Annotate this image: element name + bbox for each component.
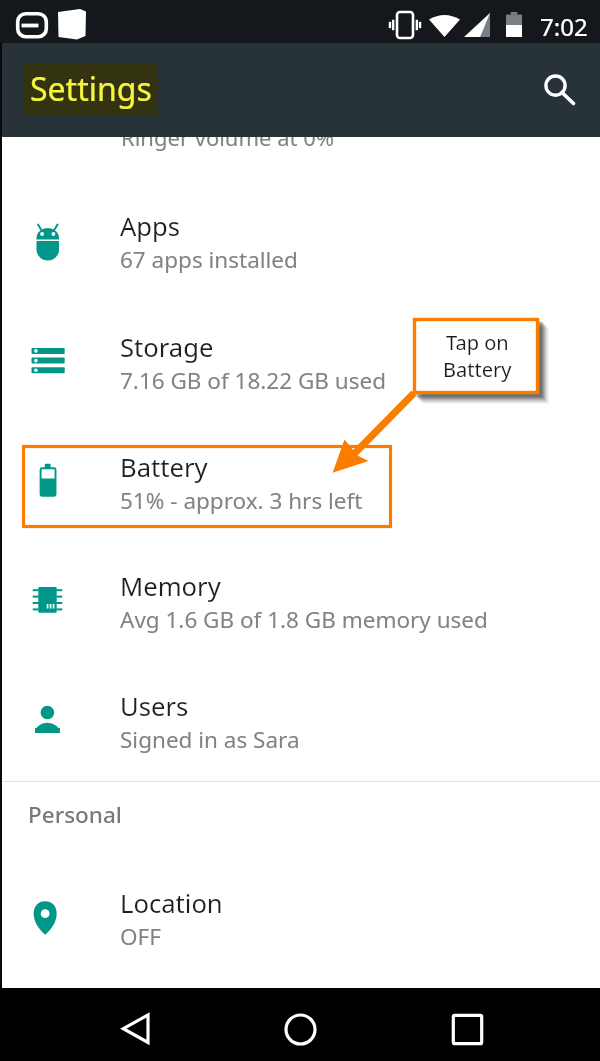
staticText: 67 apps installed xyxy=(120,244,298,275)
staticText: Ringer volume at 0% xyxy=(121,122,335,152)
button[interactable]: Battery xyxy=(0,419,600,539)
button[interactable]: Home xyxy=(275,1002,325,1052)
button[interactable]: Settings xyxy=(24,64,158,115)
staticText: Settings xyxy=(30,67,152,111)
button[interactable]: Search xyxy=(530,66,578,114)
staticText: OFF xyxy=(120,921,161,952)
button[interactable]: Memory xyxy=(0,538,600,658)
staticText: Battery xyxy=(443,356,512,383)
staticText: Avg 1.6 GB of 1.8 GB memory used xyxy=(120,604,488,635)
staticText: 51% - approx. 3 hrs left xyxy=(120,485,363,516)
button[interactable]: Recents xyxy=(442,1002,492,1052)
staticText: Signed in as Sara xyxy=(120,724,300,755)
staticText: Location xyxy=(120,886,223,921)
staticText: Memory xyxy=(120,569,221,604)
button[interactable]: Apps xyxy=(0,178,600,298)
button[interactable]: Storage xyxy=(0,299,600,419)
staticText: Tap on xyxy=(446,329,509,356)
staticText: Storage xyxy=(120,330,214,365)
staticText: Personal xyxy=(28,799,122,830)
staticText: 7.16 GB of 18.22 GB used xyxy=(120,365,386,396)
staticText: 7:02 xyxy=(540,10,588,43)
button[interactable]: Location xyxy=(0,855,600,975)
button[interactable]: Back xyxy=(110,1002,160,1052)
staticText: Users xyxy=(120,689,189,724)
button[interactable]: Users xyxy=(0,658,600,778)
staticText: Apps xyxy=(120,209,181,244)
staticText: Battery xyxy=(120,450,208,485)
